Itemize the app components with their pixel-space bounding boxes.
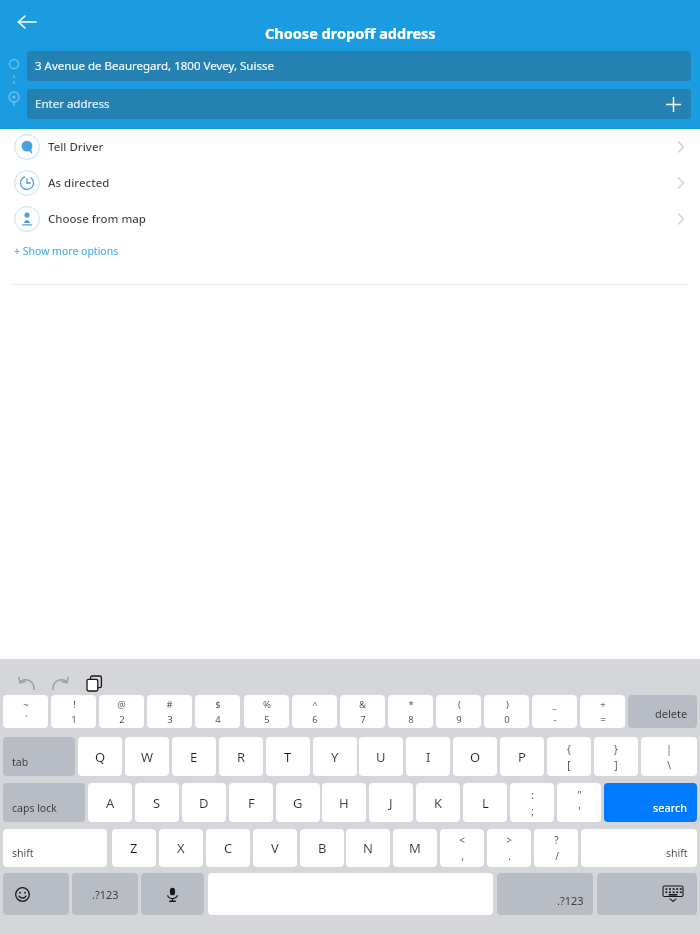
button[interactable]: $ xyxy=(195,695,240,728)
button[interactable]: R xyxy=(219,737,263,776)
staticText: , xyxy=(461,849,464,863)
staticText: ) xyxy=(506,698,509,711)
button[interactable]: T xyxy=(266,737,310,776)
button[interactable]: X xyxy=(159,829,203,867)
staticText: L xyxy=(482,794,489,812)
staticText: 8 xyxy=(408,713,414,726)
button[interactable]: G xyxy=(276,783,320,822)
button[interactable]: U xyxy=(359,737,403,776)
button[interactable]: Choose from map xyxy=(0,201,700,237)
button[interactable]: ? xyxy=(534,829,578,867)
button[interactable]: E xyxy=(172,737,216,776)
button[interactable]: emoji xyxy=(3,873,69,915)
button[interactable]: P xyxy=(500,737,544,776)
staticText: \ xyxy=(667,758,671,772)
staticText: H xyxy=(339,794,349,812)
staticText: Z xyxy=(130,839,138,857)
button[interactable]: 3 Avenue de Beauregard, 1800 Vevey, Suis… xyxy=(27,51,691,81)
button[interactable]: + Show more options xyxy=(0,237,700,265)
button[interactable]: K xyxy=(416,783,460,822)
button[interactable]: F xyxy=(229,783,273,822)
staticText: + Show more options xyxy=(14,244,119,258)
staticText: 3 Avenue de Beauregard, 1800 Vevey, Suis… xyxy=(35,58,274,74)
button[interactable]: mic xyxy=(141,873,204,915)
button[interactable]: O xyxy=(453,737,497,776)
button[interactable]: .?123 xyxy=(497,873,593,915)
button[interactable]: A xyxy=(88,783,132,822)
staticText: { xyxy=(567,742,571,756)
staticText: W xyxy=(141,748,154,766)
staticText: 0 xyxy=(504,713,510,726)
button[interactable]: delete xyxy=(628,695,697,728)
button[interactable]: S xyxy=(135,783,179,822)
button[interactable]: B xyxy=(300,829,344,867)
button[interactable]: Clipboard xyxy=(78,667,110,699)
button[interactable]: Add address xyxy=(661,92,685,116)
button[interactable]: tab xyxy=(3,737,75,776)
button[interactable]: kbhide xyxy=(597,873,697,915)
button[interactable]: Enter address xyxy=(27,89,691,119)
staticText: .?123 xyxy=(92,887,119,902)
button[interactable]: & xyxy=(340,695,385,728)
staticText: Q xyxy=(95,748,106,766)
button[interactable]: + xyxy=(580,695,625,728)
button[interactable]: N xyxy=(346,829,390,867)
staticText: U xyxy=(376,748,386,766)
button[interactable]: : xyxy=(510,783,554,822)
staticText: + xyxy=(600,698,606,711)
button[interactable]: shift xyxy=(581,829,697,867)
button[interactable]: _ xyxy=(532,695,577,728)
button[interactable]: Y xyxy=(313,737,357,776)
button[interactable]: ^ xyxy=(292,695,337,728)
staticText: : xyxy=(531,788,534,802)
button[interactable]: ~ xyxy=(3,695,48,728)
button[interactable]: W xyxy=(125,737,169,776)
button[interactable]: # xyxy=(147,695,192,728)
button[interactable]: .?123 xyxy=(72,873,138,915)
staticText: & xyxy=(359,698,366,711)
button[interactable]: ( xyxy=(436,695,481,728)
button[interactable]: Redo xyxy=(44,667,76,699)
button[interactable]: D xyxy=(182,783,226,822)
button[interactable]: H xyxy=(322,783,366,822)
staticText: * xyxy=(408,698,414,711)
button[interactable]: ) xyxy=(484,695,529,728)
button[interactable]: { xyxy=(547,737,591,776)
staticText: # xyxy=(166,698,173,711)
button[interactable]: As directed xyxy=(0,165,700,201)
staticText: 9 xyxy=(456,713,462,726)
button[interactable]: search xyxy=(604,783,697,822)
button[interactable]: " xyxy=(557,783,601,822)
button[interactable]: * xyxy=(388,695,433,728)
staticText: K xyxy=(434,794,443,812)
button[interactable]: C xyxy=(206,829,250,867)
staticText: As directed xyxy=(48,175,110,191)
button[interactable]: | xyxy=(641,737,697,776)
button[interactable]: M xyxy=(393,829,437,867)
button[interactable]: ! xyxy=(51,695,96,728)
button[interactable]: V xyxy=(253,829,297,867)
staticText: [ xyxy=(567,758,571,772)
button[interactable]: } xyxy=(594,737,638,776)
staticText: " xyxy=(577,788,582,802)
button[interactable]: @ xyxy=(99,695,144,728)
button[interactable]: Back xyxy=(4,0,48,44)
button[interactable]: Q xyxy=(78,737,122,776)
button[interactable]: L xyxy=(463,783,507,822)
button[interactable]: caps lock xyxy=(3,783,85,822)
button[interactable]: Undo xyxy=(10,667,42,699)
staticText: J xyxy=(389,794,393,812)
staticText: tab xyxy=(12,755,29,769)
button[interactable]: Z xyxy=(112,829,156,867)
staticText: Choose from map xyxy=(48,211,146,227)
button[interactable]: Tell Driver xyxy=(0,129,700,165)
staticText: D xyxy=(199,794,209,812)
button[interactable]: < xyxy=(440,829,484,867)
button[interactable]: shift xyxy=(3,829,107,867)
button[interactable]: % xyxy=(244,695,289,728)
button[interactable]: > xyxy=(487,829,531,867)
button[interactable]: I xyxy=(406,737,450,776)
button[interactable]: J xyxy=(369,783,413,822)
staticText: ' xyxy=(578,804,581,818)
